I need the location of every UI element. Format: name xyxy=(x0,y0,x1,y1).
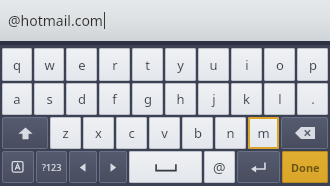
button[interactable]: u xyxy=(198,48,229,81)
staticText: y xyxy=(177,56,184,74)
button[interactable]: Change keyboard xyxy=(2,151,34,183)
staticText: e xyxy=(78,56,86,74)
staticText: k xyxy=(243,90,250,108)
staticText: s xyxy=(46,90,53,108)
button[interactable]: Done xyxy=(282,151,328,183)
staticText: j xyxy=(212,90,216,108)
button[interactable]: Shift xyxy=(2,117,48,149)
button[interactable]: f xyxy=(99,83,130,115)
staticText: q xyxy=(13,56,21,74)
button[interactable]: q xyxy=(2,48,32,81)
staticText: c xyxy=(128,124,135,142)
staticText: p xyxy=(309,56,317,74)
staticText: m xyxy=(257,124,270,142)
staticText: v xyxy=(161,124,168,142)
staticText: w xyxy=(44,56,55,74)
button[interactable]: . xyxy=(297,83,328,115)
staticText: d xyxy=(78,90,86,108)
staticText: z xyxy=(62,124,69,142)
button[interactable]: At sign xyxy=(204,151,235,183)
button[interactable]: @hotmail.com xyxy=(0,0,330,41)
button[interactable]: a xyxy=(2,83,32,115)
button[interactable]: y xyxy=(165,48,196,81)
button[interactable]: s xyxy=(34,83,64,115)
button[interactable]: Symbols xyxy=(36,151,67,183)
button[interactable]: o xyxy=(264,48,295,81)
button[interactable]: Move right xyxy=(99,151,127,183)
staticText: t xyxy=(145,56,150,74)
staticText: b xyxy=(194,124,202,142)
staticText: x xyxy=(95,124,102,142)
staticText: ?123 xyxy=(42,161,62,173)
button[interactable]: w xyxy=(34,48,64,81)
staticText: o xyxy=(276,56,284,74)
button[interactable]: Space xyxy=(129,151,202,183)
button[interactable]: p xyxy=(297,48,328,81)
button[interactable]: d xyxy=(66,83,97,115)
staticText: n xyxy=(226,124,235,142)
staticText: @hotmail.com xyxy=(8,11,103,30)
button[interactable]: e xyxy=(66,48,97,81)
staticText: g xyxy=(144,90,152,108)
button[interactable]: h xyxy=(165,83,196,115)
button[interactable]: l xyxy=(264,83,295,115)
staticText: r xyxy=(112,56,118,74)
button[interactable]: Move left xyxy=(69,151,97,183)
button[interactable]: z xyxy=(50,117,81,149)
staticText: @ xyxy=(213,158,226,177)
staticText: h xyxy=(176,90,185,108)
staticText: l xyxy=(278,90,282,108)
button[interactable]: t xyxy=(132,48,163,81)
button[interactable]: c xyxy=(116,117,147,149)
button[interactable]: b xyxy=(182,117,213,149)
button[interactable]: Enter xyxy=(237,151,280,183)
button[interactable]: k xyxy=(231,83,262,115)
button[interactable]: n xyxy=(215,117,246,149)
button[interactable]: i xyxy=(231,48,262,81)
staticText: u xyxy=(209,56,218,74)
button[interactable]: r xyxy=(99,48,130,81)
button[interactable]: m xyxy=(248,117,279,149)
button[interactable]: Backspace xyxy=(281,117,328,149)
staticText: f xyxy=(112,90,117,108)
staticText: i xyxy=(245,56,249,74)
button[interactable]: g xyxy=(132,83,163,115)
button[interactable]: x xyxy=(83,117,114,149)
button[interactable]: j xyxy=(198,83,229,115)
staticText: . xyxy=(311,90,315,108)
staticText: Done xyxy=(291,160,320,175)
staticText: a xyxy=(13,90,21,108)
button[interactable]: v xyxy=(149,117,180,149)
